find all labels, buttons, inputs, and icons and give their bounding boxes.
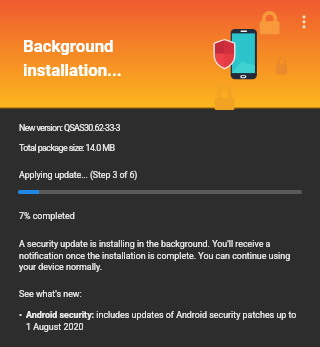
staticText: New version: QSAS30.62-33-3 — [19, 123, 120, 133]
staticText: • — [19, 310, 22, 320]
staticText: See what's new: — [19, 289, 82, 299]
staticText: Total package size: 14.0 MB — [19, 143, 115, 153]
staticText: 7% completed — [19, 211, 75, 221]
staticText: Background installation... — [23, 36, 122, 80]
button[interactable]: More options — [292, 6, 316, 30]
staticText: Applying update... (Step 3 of 6) — [19, 170, 138, 180]
staticText: A security update is installing in the b… — [19, 239, 303, 272]
staticText: Android security: includes updates of An… — [26, 310, 303, 332]
